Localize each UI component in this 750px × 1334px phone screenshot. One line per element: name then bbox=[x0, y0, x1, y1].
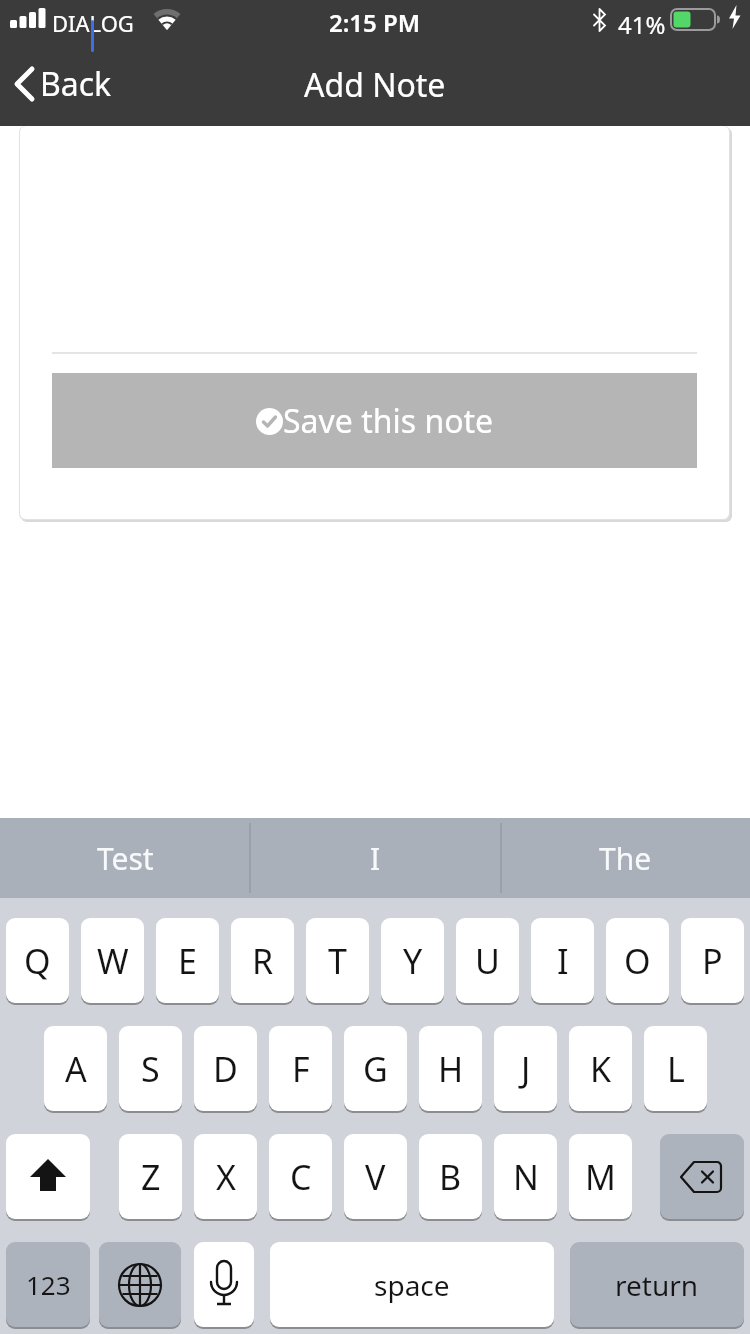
staticText: I bbox=[557, 938, 569, 984]
staticText: M bbox=[585, 1154, 616, 1200]
button[interactable]: C bbox=[269, 1134, 332, 1219]
button[interactable]: E bbox=[156, 918, 219, 1003]
staticText: R bbox=[252, 938, 274, 984]
button[interactable]: O bbox=[606, 918, 669, 1003]
button[interactable]: N bbox=[494, 1134, 557, 1219]
staticText: I bbox=[370, 838, 381, 879]
staticText: H bbox=[438, 1046, 464, 1092]
button[interactable]: B bbox=[419, 1134, 482, 1219]
button[interactable]: W bbox=[81, 918, 144, 1003]
button[interactable] bbox=[194, 1242, 254, 1327]
staticText: A bbox=[65, 1046, 87, 1092]
staticText: Z bbox=[141, 1154, 161, 1200]
staticText: 123 bbox=[26, 1267, 71, 1302]
button[interactable]: V bbox=[344, 1134, 407, 1219]
button[interactable]: F bbox=[269, 1026, 332, 1111]
staticText: B bbox=[439, 1154, 462, 1200]
button[interactable]: Test bbox=[0, 818, 250, 898]
button[interactable]: Save this note bbox=[52, 373, 697, 468]
staticText: return bbox=[615, 1266, 699, 1304]
button[interactable]: A bbox=[44, 1026, 107, 1111]
staticText: L bbox=[667, 1046, 685, 1092]
staticText: 2:15 PM bbox=[329, 6, 421, 34]
button[interactable]: I bbox=[531, 918, 594, 1003]
staticText: O bbox=[624, 938, 651, 984]
staticText: Save this note bbox=[283, 399, 494, 443]
staticText: G bbox=[363, 1046, 388, 1092]
button[interactable]: K bbox=[569, 1026, 632, 1111]
button[interactable]: G bbox=[344, 1026, 407, 1111]
staticText: Back bbox=[40, 62, 112, 106]
staticText: K bbox=[590, 1046, 612, 1092]
staticText: J bbox=[521, 1046, 531, 1092]
button[interactable]: Y bbox=[381, 918, 444, 1003]
staticText: U bbox=[475, 938, 500, 984]
staticText: T bbox=[328, 938, 347, 984]
staticText: C bbox=[290, 1154, 312, 1200]
button[interactable]: U bbox=[456, 918, 519, 1003]
button[interactable]: space bbox=[270, 1242, 554, 1327]
staticText: V bbox=[365, 1154, 386, 1200]
staticText: Q bbox=[24, 938, 51, 984]
button[interactable]: H bbox=[419, 1026, 482, 1111]
button[interactable]: Back bbox=[6, 58, 146, 112]
button[interactable]: T bbox=[306, 918, 369, 1003]
staticText: space bbox=[374, 1266, 450, 1304]
staticText: P bbox=[702, 938, 723, 984]
button[interactable] bbox=[99, 1242, 181, 1327]
button[interactable]: R bbox=[231, 918, 294, 1003]
staticText: Test bbox=[97, 838, 154, 879]
staticText: F bbox=[292, 1046, 310, 1092]
staticText: 41% bbox=[618, 8, 666, 41]
button[interactable]: S bbox=[119, 1026, 182, 1111]
button[interactable]: X bbox=[194, 1134, 257, 1219]
staticText: Add Note bbox=[304, 63, 446, 107]
staticText: W bbox=[97, 938, 129, 984]
button[interactable]: 123 bbox=[6, 1242, 90, 1327]
button[interactable]: D bbox=[194, 1026, 257, 1111]
button[interactable]: I bbox=[250, 818, 500, 898]
button[interactable] bbox=[660, 1134, 744, 1219]
button[interactable]: J bbox=[494, 1026, 557, 1111]
button[interactable]: Q bbox=[6, 918, 69, 1003]
button[interactable]: L bbox=[644, 1026, 707, 1111]
button[interactable]: Z bbox=[119, 1134, 182, 1219]
staticText: E bbox=[178, 938, 197, 984]
staticText: The bbox=[599, 838, 652, 879]
button[interactable]: The bbox=[500, 818, 750, 898]
staticText: N bbox=[513, 1154, 539, 1200]
staticText: D bbox=[213, 1046, 238, 1092]
staticText: S bbox=[141, 1046, 160, 1092]
button[interactable] bbox=[6, 1134, 90, 1219]
button[interactable]: M bbox=[569, 1134, 632, 1219]
staticText: DIALOG bbox=[52, 8, 134, 38]
button[interactable]: return bbox=[570, 1242, 744, 1327]
staticText: X bbox=[216, 1154, 236, 1200]
button[interactable]: P bbox=[681, 918, 744, 1003]
staticText: Y bbox=[403, 938, 423, 984]
